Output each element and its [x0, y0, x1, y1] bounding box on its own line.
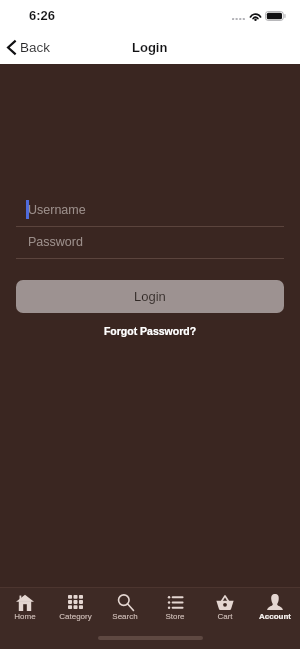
- button[interactable]: Store: [150, 588, 200, 628]
- button[interactable]: Login: [16, 280, 284, 313]
- staticText: Back: [20, 40, 51, 55]
- staticText: Password: [28, 235, 83, 249]
- staticText: Login: [134, 289, 166, 304]
- button[interactable]: Home: [0, 588, 50, 628]
- button[interactable]: Username: [16, 199, 284, 227]
- staticText: Home: [14, 612, 36, 621]
- staticText: Login: [132, 40, 168, 55]
- button[interactable]: Forgot Password?: [0, 325, 300, 337]
- button[interactable]: Search: [100, 588, 150, 628]
- staticText: Cart: [217, 612, 233, 621]
- button[interactable]: Account: [250, 588, 300, 628]
- staticText: Account: [259, 612, 291, 621]
- button[interactable]: Cart: [200, 588, 250, 628]
- button[interactable]: Back: [0, 30, 59, 64]
- staticText: 6:26: [29, 8, 56, 23]
- button[interactable]: Category: [50, 588, 100, 628]
- staticText: Category: [59, 612, 92, 621]
- staticText: Store: [165, 612, 185, 621]
- button[interactable]: Password: [16, 231, 284, 259]
- staticText: Search: [112, 612, 138, 621]
- staticText: Username: [28, 203, 86, 217]
